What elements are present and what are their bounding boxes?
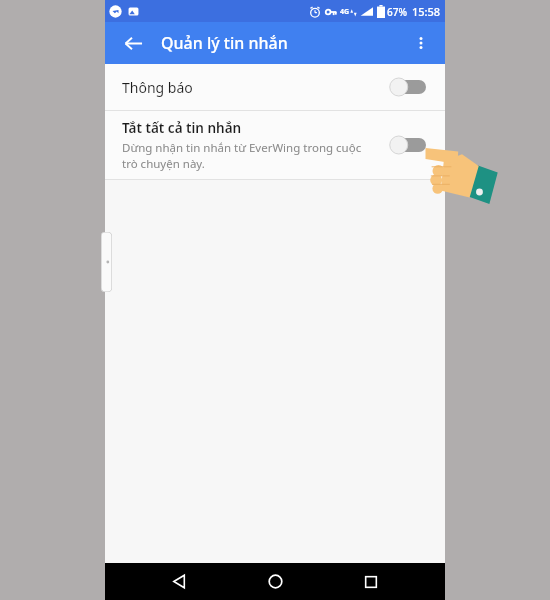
button[interactable]: Tắt tất cả tin nhắn <box>105 111 445 179</box>
staticText: Quản lý tin nhắn <box>161 32 288 54</box>
staticText: Tắt tất cả tin nhắn <box>122 119 242 137</box>
staticText: 67% <box>387 5 407 19</box>
button[interactable]: Back <box>157 563 201 600</box>
staticText: 15:58 <box>412 4 441 19</box>
staticText: Dừng nhận tin nhắn từ EverWing trong cuộ… <box>122 140 378 171</box>
button[interactable]: Toggle <box>388 133 428 157</box>
staticText: Thông báo <box>122 78 193 97</box>
button[interactable]: Back <box>115 25 151 61</box>
staticText: 4G <box>340 7 350 17</box>
button[interactable]: More options <box>403 25 439 61</box>
button[interactable]: Thông báo <box>105 64 445 110</box>
button[interactable]: Home <box>253 563 297 600</box>
button[interactable]: Toggle <box>388 75 428 99</box>
button[interactable]: Recent apps <box>349 563 393 600</box>
